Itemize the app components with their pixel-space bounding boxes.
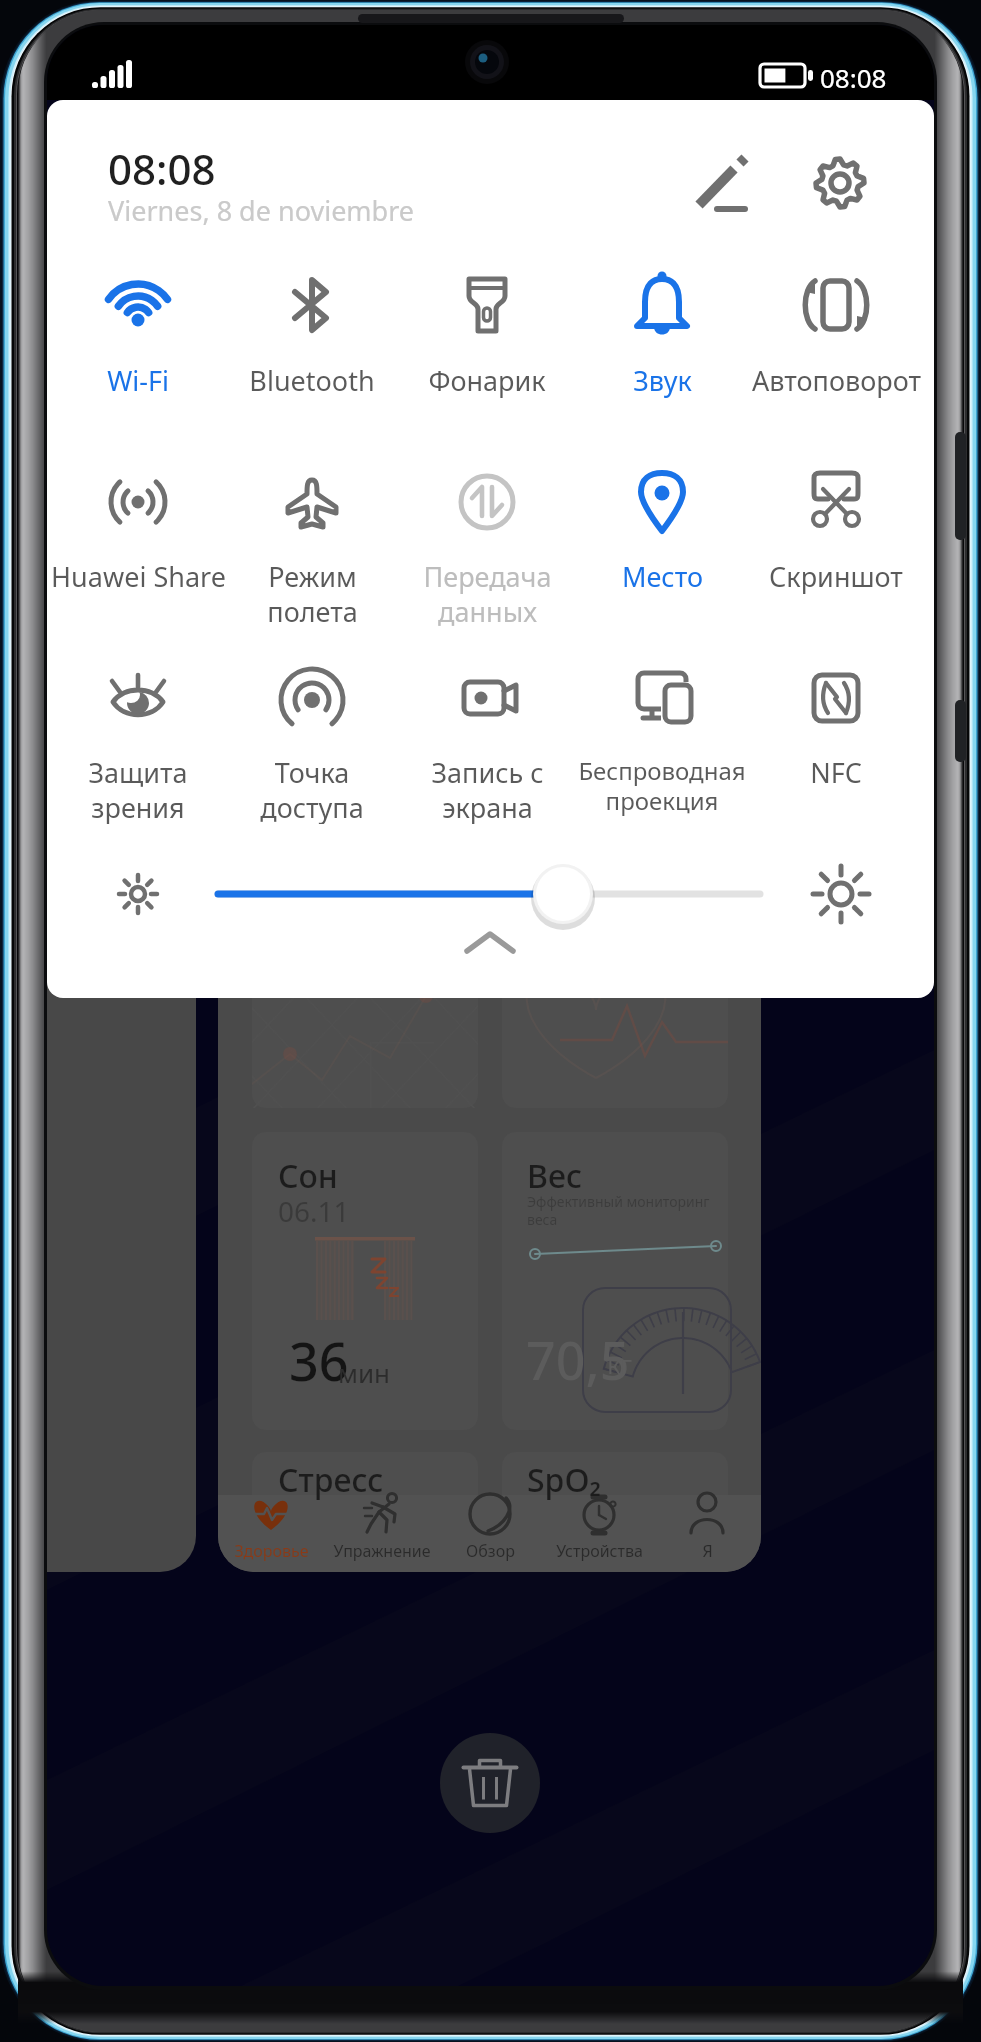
staticText: NFC xyxy=(810,754,862,791)
staticText: Звук xyxy=(633,362,692,399)
staticText: кг xyxy=(607,1346,633,1381)
button[interactable]: Bluetooth xyxy=(207,362,417,432)
staticText: Беспроводная проекция xyxy=(578,754,746,818)
button[interactable]: Я xyxy=(637,1540,777,1580)
staticText: 70,5 xyxy=(526,1324,630,1395)
button[interactable]: NFC xyxy=(731,754,941,824)
button[interactable]: Упражнение xyxy=(312,1540,452,1580)
staticText: Скриншот xyxy=(769,558,903,595)
staticText: Я xyxy=(702,1540,713,1562)
button[interactable]: Звук xyxy=(557,362,767,432)
staticText: Сон xyxy=(278,1154,338,1198)
staticText: Передача данных xyxy=(423,558,552,628)
staticText: Bluetooth xyxy=(249,362,375,399)
staticText: Wi-Fi xyxy=(107,362,169,399)
staticText: Устройства xyxy=(556,1540,643,1562)
staticText: 08:08 xyxy=(820,60,887,95)
staticText: Здоровье xyxy=(234,1540,309,1562)
button[interactable]: Wi-Fi xyxy=(33,362,243,432)
staticText: 08:08 xyxy=(108,140,216,197)
staticText: Viernes, 8 de noviembre xyxy=(108,192,415,229)
staticText: Место xyxy=(622,558,703,595)
button[interactable]: Здоровье xyxy=(201,1540,341,1580)
staticText: 36 xyxy=(289,1325,349,1396)
button[interactable]: Скриншот xyxy=(731,558,941,628)
staticText: Huawei Share xyxy=(51,558,226,595)
button[interactable]: Точка доступа xyxy=(207,754,417,824)
button[interactable]: Фонарик xyxy=(382,362,592,432)
button[interactable]: Запись с экрана xyxy=(382,754,592,824)
staticText: Фонарик xyxy=(428,362,546,399)
staticText: Защита зрения xyxy=(88,754,188,824)
button[interactable]: Clear all recent apps xyxy=(440,1733,540,1833)
button[interactable]: Huawei Share xyxy=(33,558,243,628)
staticText: Точка доступа xyxy=(260,754,364,824)
staticText: Режим полета xyxy=(267,558,358,628)
staticText: 06.11 xyxy=(278,1192,350,1230)
button[interactable]: Режим полета xyxy=(207,558,417,628)
button[interactable]: Место xyxy=(557,558,767,628)
staticText: Обзор xyxy=(466,1540,515,1562)
staticText: SpO₂ xyxy=(527,1458,602,1502)
button[interactable]: Передача данных xyxy=(382,558,592,628)
button[interactable]: Устройства xyxy=(529,1540,669,1580)
button[interactable]: Беспроводная проекция xyxy=(557,754,767,824)
button[interactable]: Защита зрения xyxy=(33,754,243,824)
button[interactable]: Обзор xyxy=(420,1540,560,1580)
staticText: мин xyxy=(338,1355,391,1390)
staticText: Стресс xyxy=(278,1458,384,1502)
button[interactable]: Автоповорот xyxy=(731,362,941,432)
staticText: Вес xyxy=(527,1154,582,1198)
staticText: Упражнение xyxy=(333,1540,431,1562)
staticText: Запись с экрана xyxy=(431,754,544,824)
staticText: Эффективный мониторинг веса xyxy=(527,1192,710,1229)
staticText: Автоповорот xyxy=(752,362,921,399)
